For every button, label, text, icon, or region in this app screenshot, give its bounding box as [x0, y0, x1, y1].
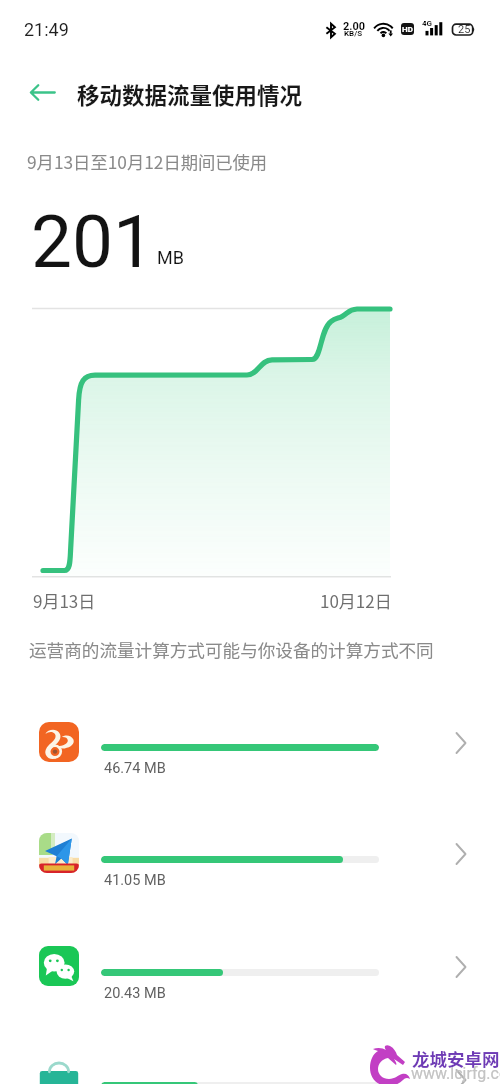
button[interactable] [0, 1033, 500, 1084]
staticText: www.lcjrfg.com [411, 1064, 500, 1083]
staticText: 46.74 MB [104, 760, 166, 777]
staticText: KB/S [344, 29, 363, 38]
staticText: 龙城安卓网 [412, 1046, 500, 1071]
staticText: 移动数据流量使用情况 [77, 78, 303, 111]
staticText: 4G [422, 19, 433, 28]
staticText: 10月12日 [320, 588, 392, 613]
staticText: 运营商的流量计算方式可能与你设备的计算方式不同 [29, 637, 434, 662]
staticText: 41.05 MB [104, 872, 166, 889]
staticText: HD [402, 25, 413, 34]
button[interactable] [0, 807, 500, 899]
staticText: 201 [31, 199, 155, 285]
staticText: 21:49 [24, 19, 69, 40]
button[interactable] [0, 920, 500, 1012]
staticText: MB [157, 247, 184, 268]
staticText: 2.00 [343, 20, 366, 33]
staticText: 9月13日 [33, 588, 96, 613]
button[interactable] [0, 696, 500, 788]
staticText: 9月13日至10月12日期间已使用 [27, 149, 268, 174]
staticText: 20.43 MB [104, 985, 166, 1002]
staticText: 25 [458, 23, 471, 36]
button[interactable]: Back [20, 70, 64, 114]
